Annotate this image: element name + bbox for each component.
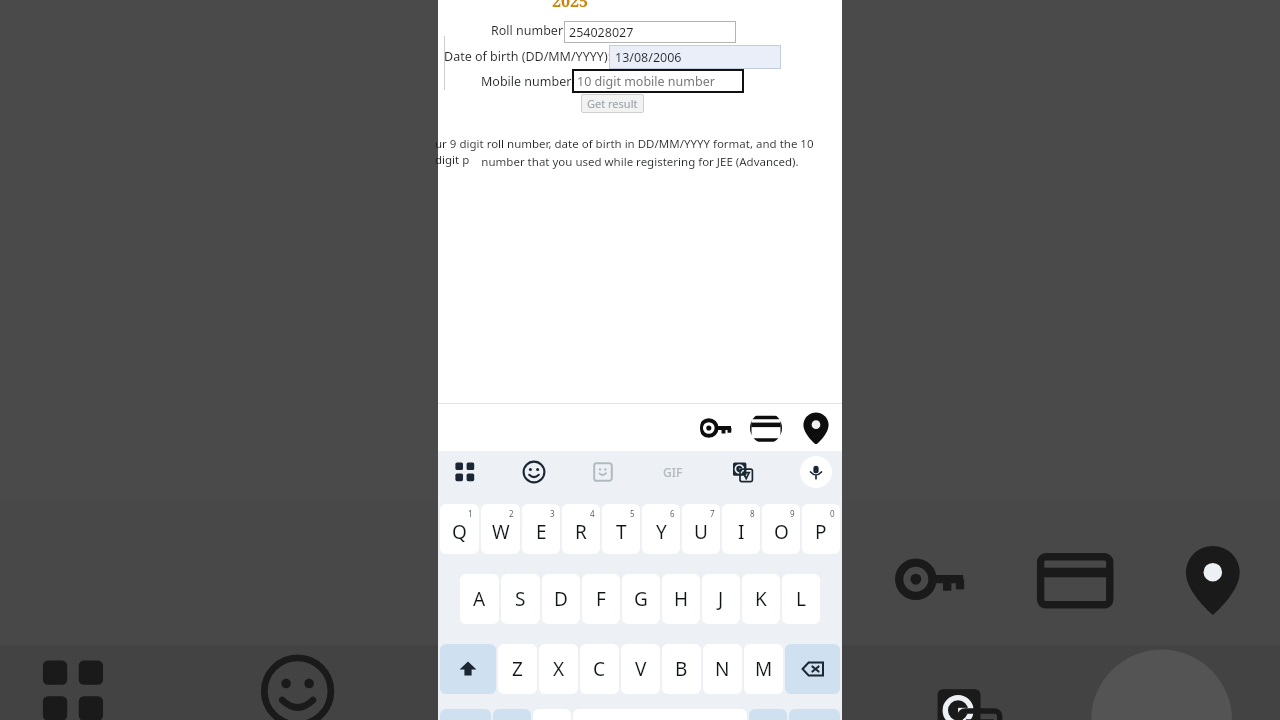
staticText: 8 (750, 508, 755, 519)
staticText: J (718, 586, 724, 612)
button[interactable]: F (582, 574, 620, 624)
button[interactable]: N (703, 644, 742, 694)
button[interactable]: Get result (581, 94, 644, 113)
button[interactable]: H (662, 574, 700, 624)
button[interactable]: 0 (802, 504, 840, 554)
staticText: T (616, 519, 627, 545)
staticText: Y (656, 519, 667, 545)
staticText: R (575, 519, 587, 545)
staticText: P (815, 519, 827, 545)
staticText: 254028027 (569, 24, 634, 41)
button[interactable]: Addresses (800, 412, 832, 444)
staticText: Date of birth (DD/MM/YYYY): (444, 48, 612, 65)
button[interactable]: 8 (722, 504, 760, 554)
button[interactable]: Backspace (785, 644, 840, 694)
staticText: 2 (509, 508, 514, 519)
button[interactable]: 10 digit mobile number (572, 69, 744, 93)
staticText: F (596, 586, 606, 612)
button[interactable]: 5 (602, 504, 640, 554)
button[interactable]: K (742, 574, 780, 624)
button[interactable]: 4 (562, 504, 600, 554)
button[interactable]: Translate (728, 457, 758, 487)
staticText: Mobile number: (481, 73, 575, 90)
button[interactable]: 7 (682, 504, 720, 554)
button[interactable]: C (580, 644, 619, 694)
staticText: I (738, 519, 745, 545)
staticText: O (774, 519, 789, 545)
button[interactable]: Clipboard (450, 457, 480, 487)
staticText: U (694, 519, 708, 545)
button[interactable]: 9 (762, 504, 800, 554)
staticText: S (515, 586, 526, 612)
staticText: V (635, 656, 647, 682)
button[interactable] (533, 709, 571, 720)
button[interactable]: B (662, 644, 701, 694)
button[interactable] (789, 709, 840, 720)
staticText: 6 (670, 508, 675, 519)
staticText: L (796, 586, 806, 612)
staticText: E (536, 519, 547, 545)
button[interactable]: S (501, 574, 540, 624)
button[interactable]: Z (498, 644, 537, 694)
staticText: K (755, 586, 767, 612)
staticText: 3 (550, 508, 555, 519)
button[interactable]: Emoji (519, 457, 549, 487)
button[interactable]: Stickers (588, 457, 618, 487)
staticText: 7 (710, 508, 715, 519)
staticText: Z (512, 656, 523, 682)
button[interactable]: Payment methods (750, 412, 782, 444)
staticText: H (674, 586, 689, 612)
button[interactable]: Shift (440, 644, 496, 694)
staticText: 1 (468, 508, 473, 519)
staticText: C (593, 656, 606, 682)
staticText: Q (452, 519, 467, 545)
staticText: GIF (663, 464, 683, 480)
button[interactable]: Voice input (800, 456, 832, 488)
staticText: G (634, 586, 648, 612)
staticText: Roll number: (491, 22, 567, 39)
staticText: X (553, 656, 565, 682)
staticText: 4 (590, 508, 595, 519)
button[interactable]: X (539, 644, 578, 694)
button[interactable]: M (744, 644, 783, 694)
button[interactable] (749, 709, 787, 720)
button[interactable]: 254028027 (564, 21, 736, 43)
staticText: 10 digit mobile number (577, 73, 715, 90)
button[interactable]: D (542, 574, 580, 624)
button[interactable]: A (460, 574, 499, 624)
button[interactable]: G (622, 574, 660, 624)
staticText: number that you used while registering f… (450, 154, 830, 170)
staticText: 2025 (552, 0, 589, 12)
button[interactable]: 2 (481, 504, 520, 554)
staticText: W (492, 519, 510, 545)
button[interactable]: V (621, 644, 660, 694)
button[interactable]: Passwords (700, 412, 732, 444)
button[interactable]: 3 (522, 504, 560, 554)
button[interactable] (493, 709, 531, 720)
button[interactable]: J (702, 574, 740, 624)
staticText: M (755, 656, 773, 682)
staticText: N (715, 656, 730, 682)
staticText: A (473, 586, 486, 612)
staticText: 5 (630, 508, 635, 519)
staticText: D (554, 586, 568, 612)
staticText: B (675, 656, 688, 682)
button[interactable] (440, 709, 491, 720)
button[interactable]: 6 (642, 504, 680, 554)
button[interactable]: 1 (440, 504, 479, 554)
staticText: ur 9 digit roll number, date of birth in… (435, 136, 839, 168)
staticText: 0 (830, 508, 835, 519)
staticText: 9 (790, 508, 795, 519)
button[interactable]: L (782, 574, 820, 624)
button[interactable]: 13/08/2006 (609, 45, 781, 69)
staticText: Get result (587, 96, 638, 111)
button[interactable]: GIF (656, 455, 690, 489)
staticText: 13/08/2006 (615, 49, 682, 66)
